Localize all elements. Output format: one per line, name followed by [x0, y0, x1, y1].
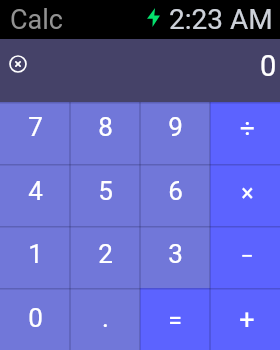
staticText: 2 — [98, 239, 113, 269]
button[interactable]: . — [70, 288, 140, 350]
staticText: 0 — [28, 303, 43, 333]
button[interactable]: 4 — [0, 164, 70, 226]
staticText: 9 — [168, 112, 183, 142]
staticText: 2:23 AM — [169, 3, 273, 36]
staticText: 6 — [168, 176, 183, 206]
button[interactable]: − — [210, 226, 280, 288]
button[interactable]: ÷ — [210, 102, 280, 164]
staticText: 3 — [168, 239, 183, 269]
button[interactable]: 3 — [140, 226, 210, 288]
button[interactable]: Clear — [5, 50, 31, 76]
staticText: 1 — [28, 239, 43, 269]
button[interactable]: 7 — [0, 102, 70, 164]
staticText: × — [241, 180, 254, 207]
staticText: . — [102, 303, 109, 333]
staticText: + — [239, 304, 255, 336]
staticText: ÷ — [240, 113, 255, 143]
button[interactable]: 1 — [0, 226, 70, 288]
staticText: = — [168, 306, 182, 335]
staticText: 8 — [98, 112, 113, 142]
button[interactable]: 2 — [70, 226, 140, 288]
button[interactable]: = — [140, 288, 210, 350]
staticText: 5 — [98, 176, 113, 206]
button[interactable]: 8 — [70, 102, 140, 164]
button[interactable]: 9 — [140, 102, 210, 164]
button[interactable]: 0 — [0, 288, 70, 350]
staticText: − — [240, 243, 254, 270]
button[interactable]: 5 — [70, 164, 140, 226]
staticText: Calc — [10, 4, 63, 36]
staticText: 0 — [260, 49, 277, 83]
button[interactable]: + — [210, 288, 280, 350]
button[interactable]: 6 — [140, 164, 210, 226]
staticText: 4 — [28, 176, 43, 206]
button[interactable]: × — [210, 164, 280, 226]
staticText: 7 — [28, 112, 43, 142]
